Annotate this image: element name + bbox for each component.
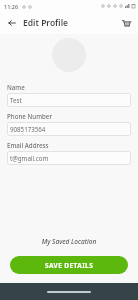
button[interactable]: Email Address xyxy=(7,141,131,165)
staticText: t@gmail.com xyxy=(10,154,49,162)
staticText: Test xyxy=(10,96,22,104)
button[interactable]: Back xyxy=(5,16,19,30)
button[interactable]: My Saved Location xyxy=(0,237,138,246)
staticText: 9085173564 xyxy=(10,125,46,133)
staticText: Phone Number xyxy=(7,112,53,120)
staticText: SAVE DETAILS xyxy=(45,261,94,270)
button[interactable]: Cart xyxy=(119,16,133,30)
button[interactable]: Phone Number xyxy=(7,112,131,136)
staticText: Name xyxy=(7,83,25,91)
button[interactable]: SAVE DETAILS xyxy=(10,256,128,274)
staticText: Edit Profile xyxy=(23,17,69,29)
button[interactable]: Change profile photo xyxy=(52,38,86,72)
staticText: 11:26 xyxy=(4,3,19,10)
button[interactable]: Name xyxy=(7,83,131,107)
staticText: Email Address xyxy=(7,141,49,149)
